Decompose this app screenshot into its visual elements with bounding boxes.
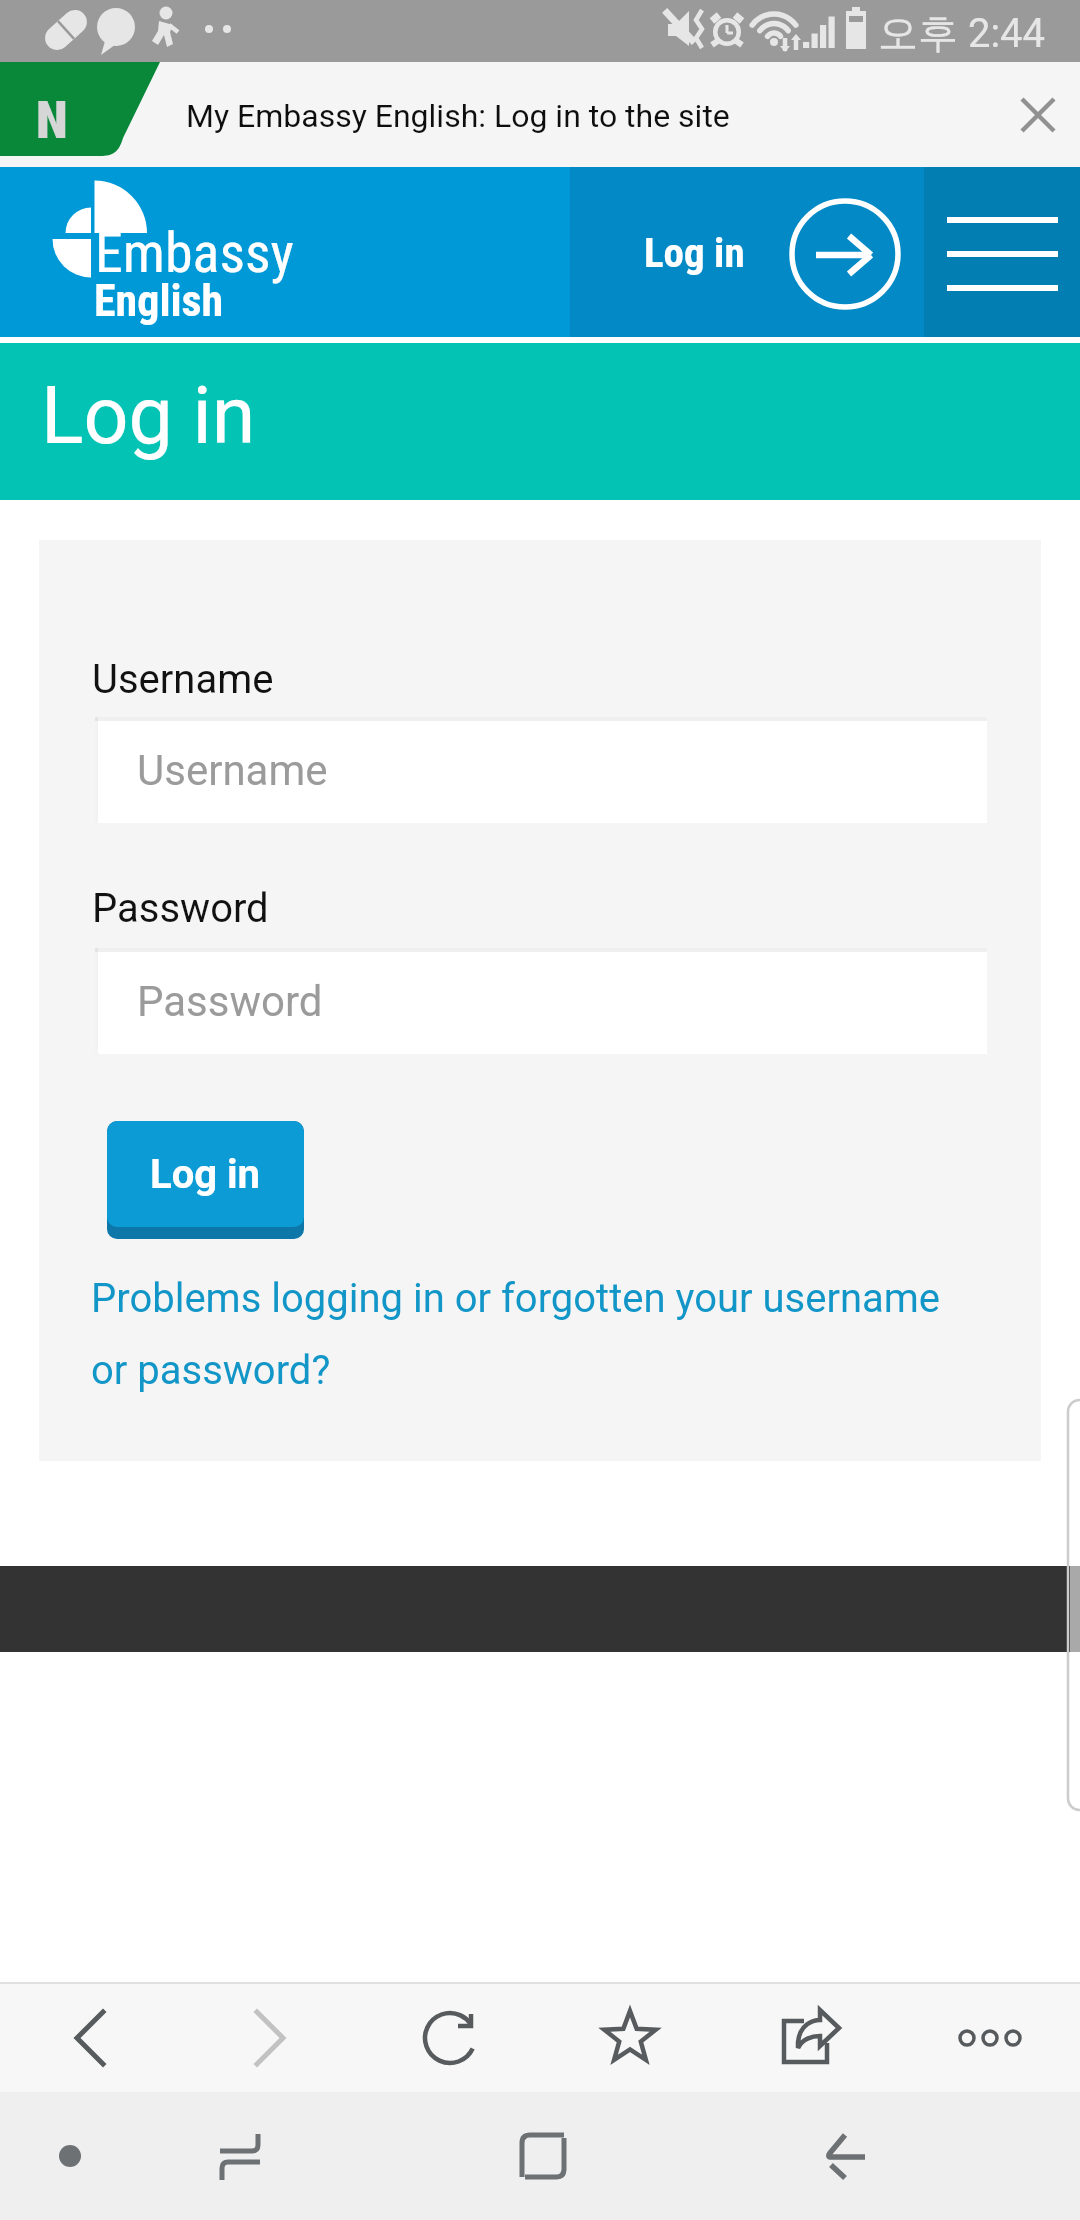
button[interactable]: Username: [95, 717, 987, 823]
button[interactable]: Menu: [924, 167, 1080, 337]
staticText: Log in: [41, 370, 256, 463]
button[interactable]: Password: [95, 948, 987, 1054]
button[interactable]: Close: [994, 62, 1080, 167]
button[interactable]: More: [900, 1984, 1080, 2092]
staticText: Log in: [150, 1151, 261, 1198]
button[interactable]: Problems logging in or forgotten your us…: [91, 1275, 981, 1394]
staticText: Password: [137, 977, 323, 1026]
staticText: Embassy: [95, 220, 294, 286]
button[interactable]: Recents: [176, 2092, 304, 2220]
staticText: Log in: [644, 229, 745, 277]
button[interactable]: Log in: [107, 1121, 304, 1239]
button[interactable]: Embassy English home: [0, 167, 570, 337]
staticText: N: [36, 90, 68, 151]
button[interactable]: Assistant: [6, 2092, 134, 2220]
staticText: 오후 2:44: [878, 8, 1046, 58]
button[interactable]: Back: [781, 2092, 909, 2220]
staticText: Username: [137, 746, 328, 795]
button[interactable]: Bookmark: [540, 1984, 720, 2092]
staticText: My Embassy English: Log in to the site: [186, 97, 730, 135]
button[interactable]: Log in: [570, 167, 924, 337]
staticText: Username: [92, 656, 274, 703]
staticText: English: [94, 275, 224, 327]
button[interactable]: Home: [479, 2092, 607, 2220]
staticText: Password: [92, 885, 269, 932]
button[interactable]: Forward: [180, 1984, 360, 2092]
button[interactable]: Back: [0, 1984, 180, 2092]
button[interactable]: Reload: [360, 1984, 540, 2092]
button[interactable]: Share: [720, 1984, 900, 2092]
